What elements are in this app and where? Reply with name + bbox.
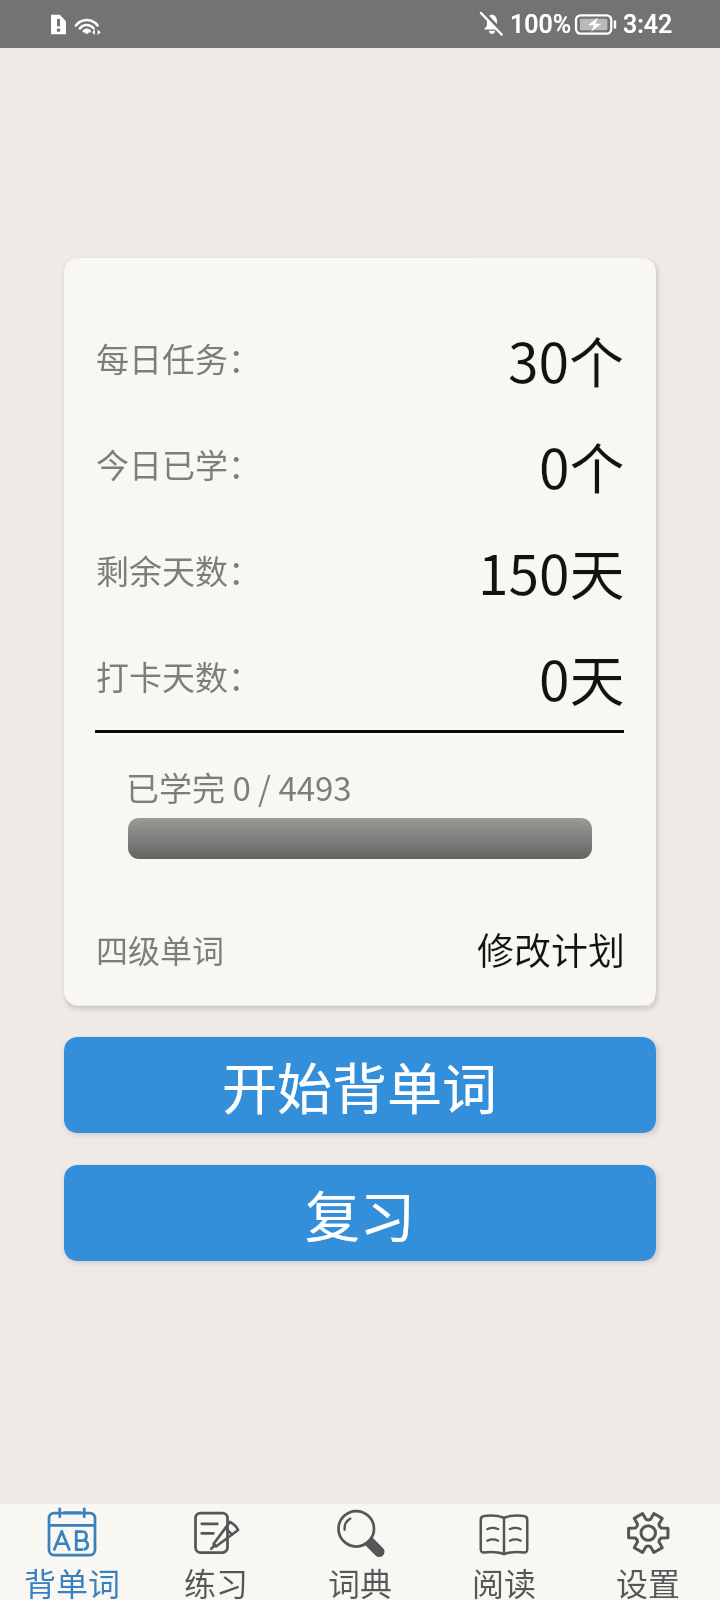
button[interactable]: 修改计划 xyxy=(461,906,641,992)
staticText: 修改计划 xyxy=(477,922,625,976)
staticText: 0天 xyxy=(539,637,625,717)
staticText: 剩余天数： xyxy=(96,546,261,594)
button[interactable]: 词典 xyxy=(288,1504,432,1600)
button[interactable]: 设置 xyxy=(576,1504,720,1600)
button[interactable]: 背单词 xyxy=(0,1504,144,1600)
staticText: 打卡天数： xyxy=(96,652,261,700)
button[interactable]: 阅读 xyxy=(432,1504,576,1600)
button[interactable]: 练习 xyxy=(144,1504,288,1600)
staticText: 词典 xyxy=(328,1559,393,1600)
staticText: 开始背单词 xyxy=(222,1045,498,1125)
staticText: 已学完 0 / 4493 xyxy=(126,763,352,811)
staticText: 背单词 xyxy=(24,1559,121,1600)
staticText: 四级单词 xyxy=(96,926,225,972)
staticText: 30个 xyxy=(508,319,625,399)
staticText: 0个 xyxy=(539,425,625,505)
staticText: 设置 xyxy=(616,1559,681,1600)
staticText: 100% xyxy=(510,10,572,39)
staticText: 练习 xyxy=(184,1559,249,1600)
staticText: 150天 xyxy=(478,531,625,611)
staticText: 3:42 xyxy=(623,10,673,39)
staticText: 今日已学： xyxy=(96,440,261,488)
staticText: 阅读 xyxy=(472,1559,537,1600)
staticText: 每日任务： xyxy=(96,334,261,382)
staticText: 复习 xyxy=(305,1173,416,1253)
button[interactable]: 开始背单词 xyxy=(64,1037,656,1133)
button[interactable]: 复习 xyxy=(64,1165,656,1261)
